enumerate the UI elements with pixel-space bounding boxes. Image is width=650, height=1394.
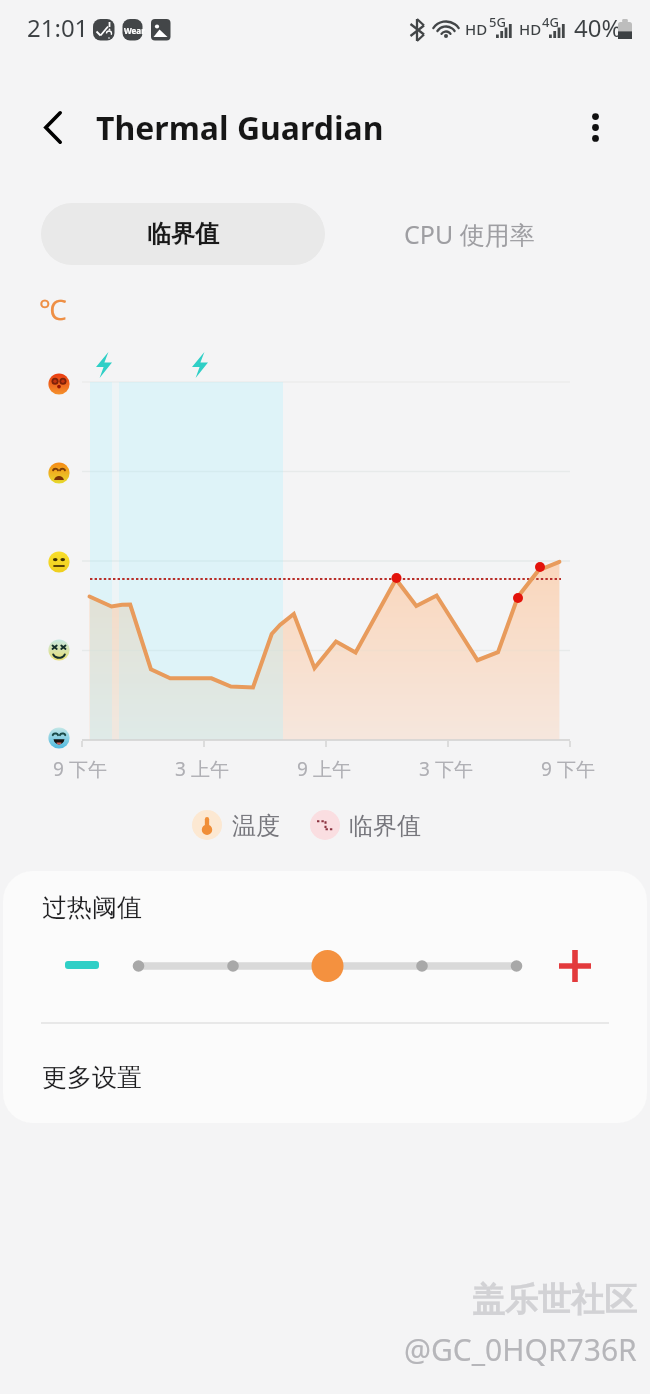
staticText: 9 下午 [541, 756, 595, 782]
staticText: 3 下午 [419, 756, 473, 782]
staticText: 4G [542, 13, 559, 31]
button[interactable]: 更多设置 [3, 1031, 647, 1123]
button[interactable]: Threshold slider [113, 941, 543, 989]
button[interactable]: Increase threshold [547, 938, 603, 994]
staticText: 21:01 [27, 11, 89, 44]
staticText: 3 上午 [175, 756, 229, 782]
staticText: @GC_0HQR736R [404, 1329, 637, 1370]
staticText: Thermal Guardian [96, 106, 384, 150]
staticText: 9 上午 [297, 756, 351, 782]
staticText: ℃ [39, 290, 67, 328]
staticText: HD [465, 19, 488, 39]
button[interactable]: More options [566, 98, 624, 156]
button[interactable]: Decrease threshold [55, 938, 109, 992]
staticText: 9 下午 [53, 756, 107, 782]
staticText: HD [519, 19, 542, 39]
staticText: 临界值 [349, 811, 421, 841]
button[interactable]: 临界值 [41, 203, 325, 265]
button[interactable]: Back [24, 98, 82, 156]
staticText: 温度 [232, 811, 280, 841]
staticText: 过热阈值 [42, 892, 142, 923]
staticText: 盖乐世社区 [472, 1279, 637, 1321]
staticText: 5G [489, 13, 506, 31]
staticText: 40% [574, 11, 622, 44]
button[interactable]: CPU 使用率 [337, 203, 602, 265]
staticText: Wear [124, 25, 145, 36]
staticText: 更多设置 [42, 1062, 142, 1093]
staticText: 临界值 [147, 219, 219, 249]
staticText: CPU 使用率 [404, 217, 535, 251]
